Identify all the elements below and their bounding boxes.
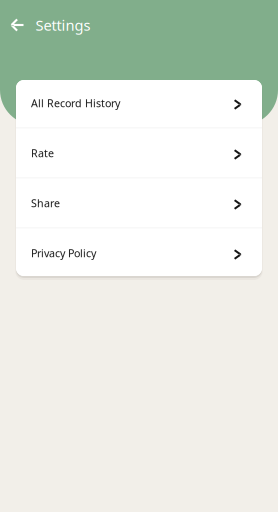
button[interactable]: Rate xyxy=(16,128,262,177)
staticText: Rate xyxy=(31,146,54,160)
button[interactable]: All Record History xyxy=(16,78,262,127)
button[interactable]: Share xyxy=(16,178,262,227)
staticText: Settings xyxy=(35,15,90,35)
staticText: Share xyxy=(31,196,60,210)
staticText: Privacy Policy xyxy=(31,246,96,260)
staticText: All Record History xyxy=(31,96,120,110)
button[interactable]: Privacy Policy xyxy=(16,228,262,277)
button[interactable]: Back xyxy=(5,13,29,37)
